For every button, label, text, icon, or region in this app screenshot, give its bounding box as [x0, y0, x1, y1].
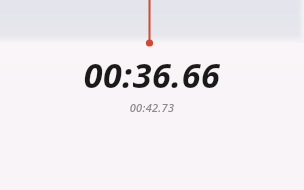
- button[interactable]: 00:36.66: [0, 52, 304, 115]
- staticText: 00:42.73: [8, 100, 296, 115]
- staticText: 00:36.66: [8, 52, 296, 98]
- button[interactable]: Lap marker: [0, 0, 304, 190]
